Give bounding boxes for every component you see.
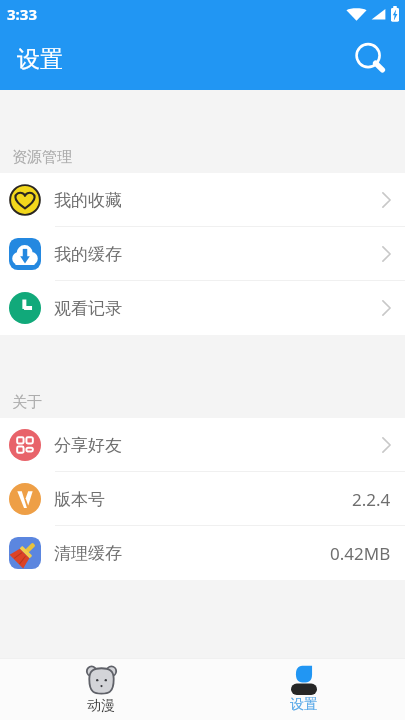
button[interactable]: Search <box>348 35 396 83</box>
staticText: 版本号 <box>54 489 105 510</box>
staticText: 3:33 <box>7 4 37 24</box>
staticText: 分享好友 <box>54 435 122 456</box>
staticText: 资源管理 <box>12 148 72 167</box>
button[interactable]: 清理缓存 <box>0 526 405 580</box>
staticText: 2.2.4 <box>352 488 391 511</box>
staticText: 我的缓存 <box>54 244 122 265</box>
button[interactable]: 分享好友 <box>0 418 405 472</box>
staticText: 我的收藏 <box>54 190 122 211</box>
staticText: 动漫 <box>87 697 115 715</box>
button[interactable]: 我的缓存 <box>0 227 405 281</box>
staticText: 观看记录 <box>54 298 122 319</box>
button[interactable]: 我的收藏 <box>0 173 405 227</box>
button[interactable]: 版本号 <box>0 472 405 526</box>
button[interactable]: 设置 <box>202 659 405 718</box>
button[interactable]: 观看记录 <box>0 281 405 335</box>
staticText: 关于 <box>12 393 42 412</box>
staticText: 设置 <box>290 696 318 714</box>
staticText: 0.42MB <box>330 542 391 565</box>
staticText: 清理缓存 <box>54 543 122 564</box>
button[interactable]: 动漫 <box>0 659 202 718</box>
staticText: 设置 <box>17 45 63 74</box>
